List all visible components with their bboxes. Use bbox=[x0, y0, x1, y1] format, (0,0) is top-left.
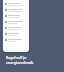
button[interactable]: Besparing bbox=[3, 13, 29, 19]
button[interactable]: Laadpaal bbox=[3, 31, 29, 37]
staticText: 21 graden bbox=[8, 22, 18, 25]
button[interactable]: Instellingen bbox=[3, 37, 29, 43]
button[interactable]: Verlichting bbox=[3, 25, 29, 31]
staticText: energieverbruik bbox=[6, 60, 34, 65]
staticText: beheer bbox=[8, 40, 15, 43]
staticText: deze maand bbox=[8, 16, 20, 19]
staticText: vandaag 4,2 kWh bbox=[8, 4, 25, 7]
staticText: niet actief bbox=[8, 34, 18, 37]
staticText: zonnepanelen bbox=[8, 10, 22, 13]
staticText: Instellingen bbox=[8, 37, 22, 40]
button[interactable]: Verbruik nu bbox=[3, 1, 29, 7]
staticText: Verlichting bbox=[8, 25, 21, 28]
button[interactable]: Opwekking bbox=[3, 7, 29, 13]
staticText: Regel zelf je bbox=[6, 55, 27, 60]
staticText: Verbruik nu bbox=[8, 1, 22, 4]
staticText: Thermostaat bbox=[8, 19, 24, 22]
staticText: Laadpaal bbox=[8, 31, 19, 34]
staticText: 4 lampen aan bbox=[8, 28, 21, 31]
staticText: Besparing bbox=[8, 13, 20, 16]
staticText: Opwekking bbox=[8, 7, 22, 10]
button[interactable]: Thermostaat bbox=[3, 19, 29, 25]
